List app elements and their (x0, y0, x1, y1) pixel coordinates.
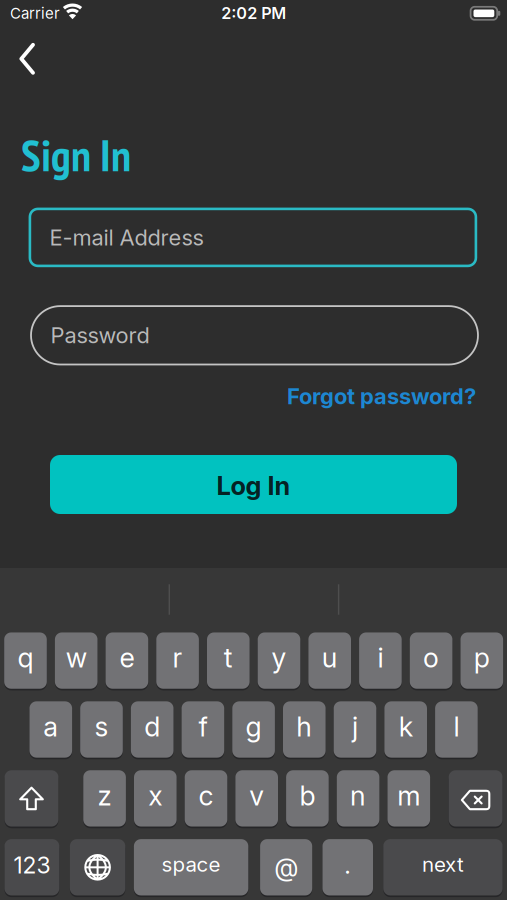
staticText: f (198, 710, 207, 743)
button[interactable]: u (308, 632, 351, 689)
staticText: n (350, 779, 366, 812)
staticText: u (322, 641, 338, 674)
staticText: space (162, 852, 221, 877)
button[interactable]: b (286, 770, 329, 826)
button[interactable]: Back (5, 37, 49, 81)
staticText: @ (274, 852, 298, 882)
staticText: Log In (216, 470, 290, 501)
button[interactable]: i (359, 632, 402, 689)
staticText: l (453, 710, 459, 743)
button[interactable]: w (55, 632, 97, 689)
staticText: 123 (13, 851, 50, 879)
staticText: o (423, 641, 439, 674)
staticText: m (397, 779, 420, 812)
button[interactable]: m (387, 770, 430, 826)
button[interactable]: Next keyboard (70, 839, 125, 895)
button[interactable]: f (182, 701, 224, 758)
staticText: p (474, 641, 490, 674)
staticText: b (299, 779, 315, 812)
staticText: t (224, 641, 233, 674)
staticText: v (249, 779, 264, 812)
button[interactable]: v (235, 770, 278, 826)
button[interactable]: j (334, 701, 376, 758)
button[interactable]: Delete (449, 770, 502, 826)
staticText: c (198, 779, 213, 812)
staticText: h (296, 710, 312, 743)
button[interactable]: . (322, 839, 373, 895)
staticText: Password (50, 322, 149, 349)
button[interactable]: next (383, 839, 503, 895)
button[interactable]: p (460, 632, 503, 689)
button[interactable]: @ (260, 839, 312, 895)
button[interactable]: x (134, 770, 177, 826)
staticText: d (144, 710, 160, 743)
button[interactable]: Shift (5, 770, 58, 826)
staticText: e (119, 641, 134, 674)
staticText: j (352, 710, 358, 743)
staticText: a (43, 710, 58, 743)
button[interactable]: Forgot password? (226, 381, 476, 411)
button[interactable]: 123 (4, 839, 59, 895)
staticText: Carrier (10, 4, 60, 22)
button[interactable]: g (232, 701, 275, 758)
button[interactable]: s (80, 701, 123, 758)
button[interactable]: d (131, 701, 173, 758)
staticText: x (148, 779, 162, 812)
button[interactable]: E-mail Address (30, 209, 476, 266)
staticText: E-mail Address (49, 224, 203, 251)
button[interactable]: space (134, 839, 248, 895)
button[interactable]: t (207, 632, 250, 689)
button[interactable]: h (283, 701, 326, 758)
button[interactable]: Log In (50, 455, 457, 514)
staticText: q (17, 641, 33, 674)
button[interactable]: Password (31, 306, 478, 364)
staticText: r (173, 641, 183, 674)
staticText: . (344, 850, 351, 879)
staticText: w (66, 641, 87, 674)
button[interactable]: e (106, 632, 148, 689)
button[interactable]: z (83, 770, 126, 826)
staticText: y (271, 641, 286, 674)
staticText: Forgot password? (287, 383, 476, 410)
staticText: Sign In (21, 126, 131, 184)
staticText: s (94, 710, 108, 743)
staticText: 2:02 PM (221, 3, 286, 23)
staticText: i (377, 641, 383, 674)
button[interactable]: r (156, 632, 199, 689)
staticText: g (246, 710, 262, 743)
button[interactable]: a (29, 701, 72, 758)
button[interactable]: l (435, 701, 478, 758)
button[interactable]: n (337, 770, 379, 826)
button[interactable]: y (258, 632, 300, 689)
button[interactable]: o (410, 632, 452, 689)
button[interactable]: c (185, 770, 227, 826)
staticText: z (98, 779, 112, 812)
button[interactable]: q (4, 632, 47, 689)
staticText: next (422, 852, 464, 877)
button[interactable]: k (384, 701, 427, 758)
staticText: k (399, 710, 413, 743)
